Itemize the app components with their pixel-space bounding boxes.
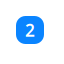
staticText: 2 [25,18,35,41]
